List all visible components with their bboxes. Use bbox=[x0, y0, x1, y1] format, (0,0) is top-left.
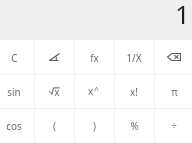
staticText: x bbox=[88, 84, 94, 96]
staticText: x bbox=[49, 85, 60, 98]
button[interactable]: cos bbox=[0, 108, 34, 142]
staticText: fx bbox=[90, 51, 99, 64]
button[interactable]: sin bbox=[0, 74, 34, 108]
button[interactable]: Backspace bbox=[154, 40, 192, 74]
button[interactable]: Angle bbox=[34, 40, 74, 74]
button[interactable]: x! bbox=[114, 74, 154, 108]
staticText: ^ bbox=[94, 84, 99, 96]
staticText: ) bbox=[93, 119, 96, 132]
button[interactable]: x bbox=[74, 74, 114, 108]
staticText: 1/X bbox=[126, 51, 142, 64]
button[interactable]: x bbox=[34, 74, 74, 108]
staticText: % bbox=[130, 119, 139, 132]
button[interactable]: % bbox=[114, 108, 154, 142]
button[interactable]: C bbox=[0, 40, 34, 74]
staticText: sin bbox=[7, 85, 21, 98]
staticText: 1 bbox=[175, 0, 190, 31]
button[interactable]: π bbox=[154, 74, 192, 108]
button[interactable]: 1/X bbox=[114, 40, 154, 74]
staticText: cos bbox=[6, 119, 22, 132]
staticText: x! bbox=[130, 85, 138, 98]
button[interactable]: ÷ bbox=[154, 108, 192, 142]
button[interactable]: ( bbox=[34, 108, 74, 142]
button[interactable]: ) bbox=[74, 108, 114, 142]
staticText: ( bbox=[53, 119, 56, 132]
staticText: π bbox=[171, 85, 178, 98]
button[interactable]: fx bbox=[74, 40, 114, 74]
staticText: ÷ bbox=[171, 119, 177, 132]
staticText: C bbox=[11, 51, 18, 64]
